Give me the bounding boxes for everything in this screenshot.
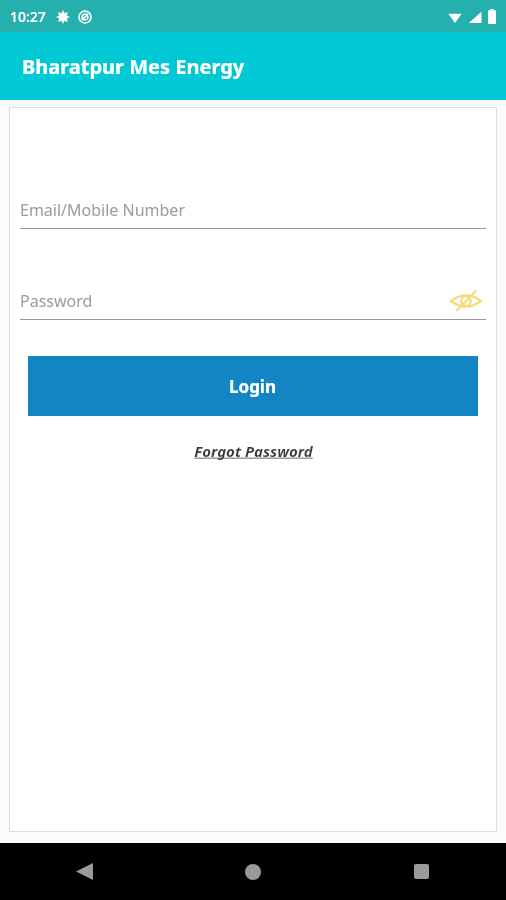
button[interactable]: Show password [446,286,486,316]
button[interactable]: Forgot Password [188,438,319,464]
staticText: Login [229,375,277,398]
button[interactable]: Home [168,843,337,900]
staticText: Password [20,290,93,312]
staticText: Email/Mobile Number [20,199,185,221]
button[interactable]: Recent apps [337,843,506,900]
staticText: Forgot Password [194,441,313,461]
staticText: 10:27 [10,7,46,26]
button[interactable]: Password [9,283,497,319]
button[interactable]: Back [0,843,168,900]
button[interactable]: Login [28,356,478,416]
staticText: Bharatpur Mes Energy [22,53,245,80]
button[interactable]: Email/Mobile Number [9,192,497,228]
